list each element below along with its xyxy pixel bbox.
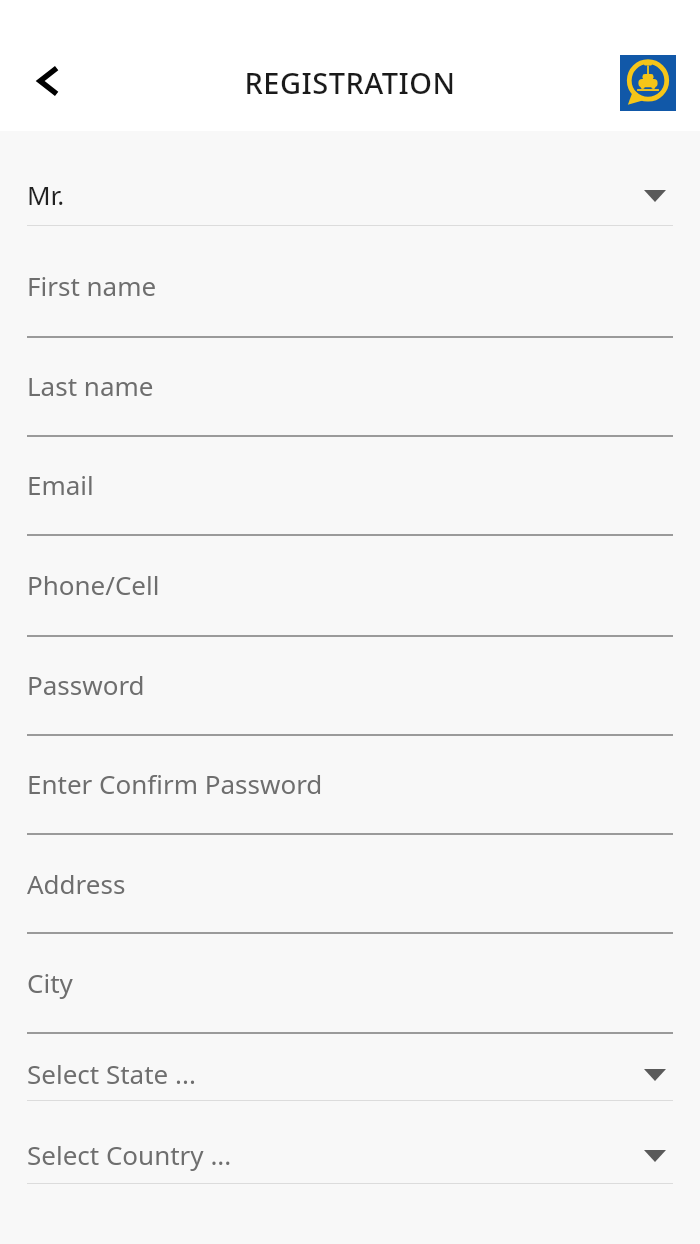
button[interactable]: Back	[19, 52, 77, 110]
staticText: Mr.	[27, 177, 65, 212]
staticText: Phone/Cell	[27, 567, 160, 602]
staticText: Select Country ...	[27, 1137, 232, 1172]
staticText: Email	[27, 467, 94, 502]
staticText: Enter Confirm Password	[27, 766, 323, 801]
button[interactable]: App logo	[620, 55, 676, 111]
button[interactable]	[0, 834, 700, 934]
button[interactable]	[0, 436, 700, 536]
button[interactable]	[0, 1101, 700, 1185]
button[interactable]	[0, 337, 700, 437]
button[interactable]	[0, 131, 700, 227]
button[interactable]	[0, 735, 700, 835]
staticText: Password	[27, 667, 145, 702]
staticText: Select State ...	[27, 1056, 196, 1091]
staticText: Last name	[27, 368, 154, 403]
button[interactable]	[0, 636, 700, 736]
staticText: Address	[27, 866, 126, 901]
staticText: First name	[27, 268, 157, 303]
button[interactable]	[0, 535, 700, 637]
staticText: REGISTRATION	[0, 63, 700, 102]
button[interactable]	[0, 226, 700, 338]
staticText: City	[27, 965, 73, 1000]
button[interactable]	[0, 933, 700, 1034]
button[interactable]	[0, 1033, 700, 1102]
